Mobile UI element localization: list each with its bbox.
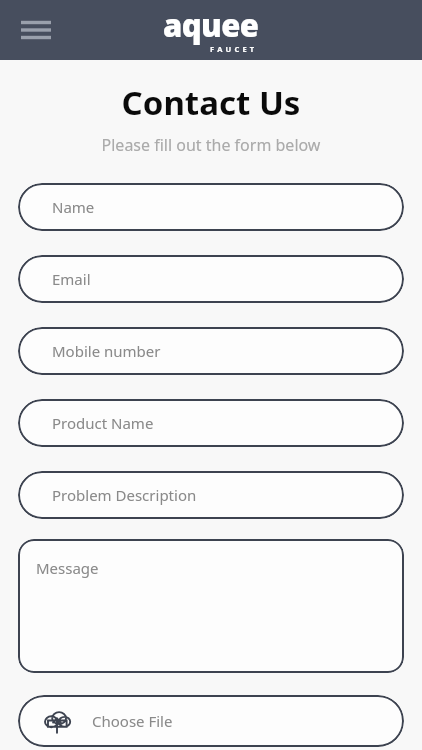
staticText: Message — [36, 558, 99, 578]
button[interactable]: Problem Description — [18, 471, 404, 519]
staticText: Mobile number — [52, 341, 161, 361]
staticText: Product Name — [52, 413, 154, 433]
button[interactable]: Menu — [14, 8, 58, 52]
staticText: FAUCET — [210, 44, 258, 54]
staticText: Problem Description — [52, 485, 197, 505]
staticText: Name — [52, 197, 95, 217]
staticText: Contact Us — [0, 80, 422, 125]
staticText: Email — [52, 269, 91, 289]
button[interactable]: Choose File — [18, 695, 404, 747]
button[interactable]: Name — [18, 183, 404, 231]
staticText: Please fill out the form below — [0, 134, 422, 156]
button[interactable]: Mobile number — [18, 327, 404, 375]
button[interactable]: Product Name — [18, 399, 404, 447]
staticText: aquee — [163, 4, 259, 46]
button[interactable]: Message — [18, 539, 404, 673]
button[interactable]: Email — [18, 255, 404, 303]
staticText: Choose File — [92, 711, 173, 731]
